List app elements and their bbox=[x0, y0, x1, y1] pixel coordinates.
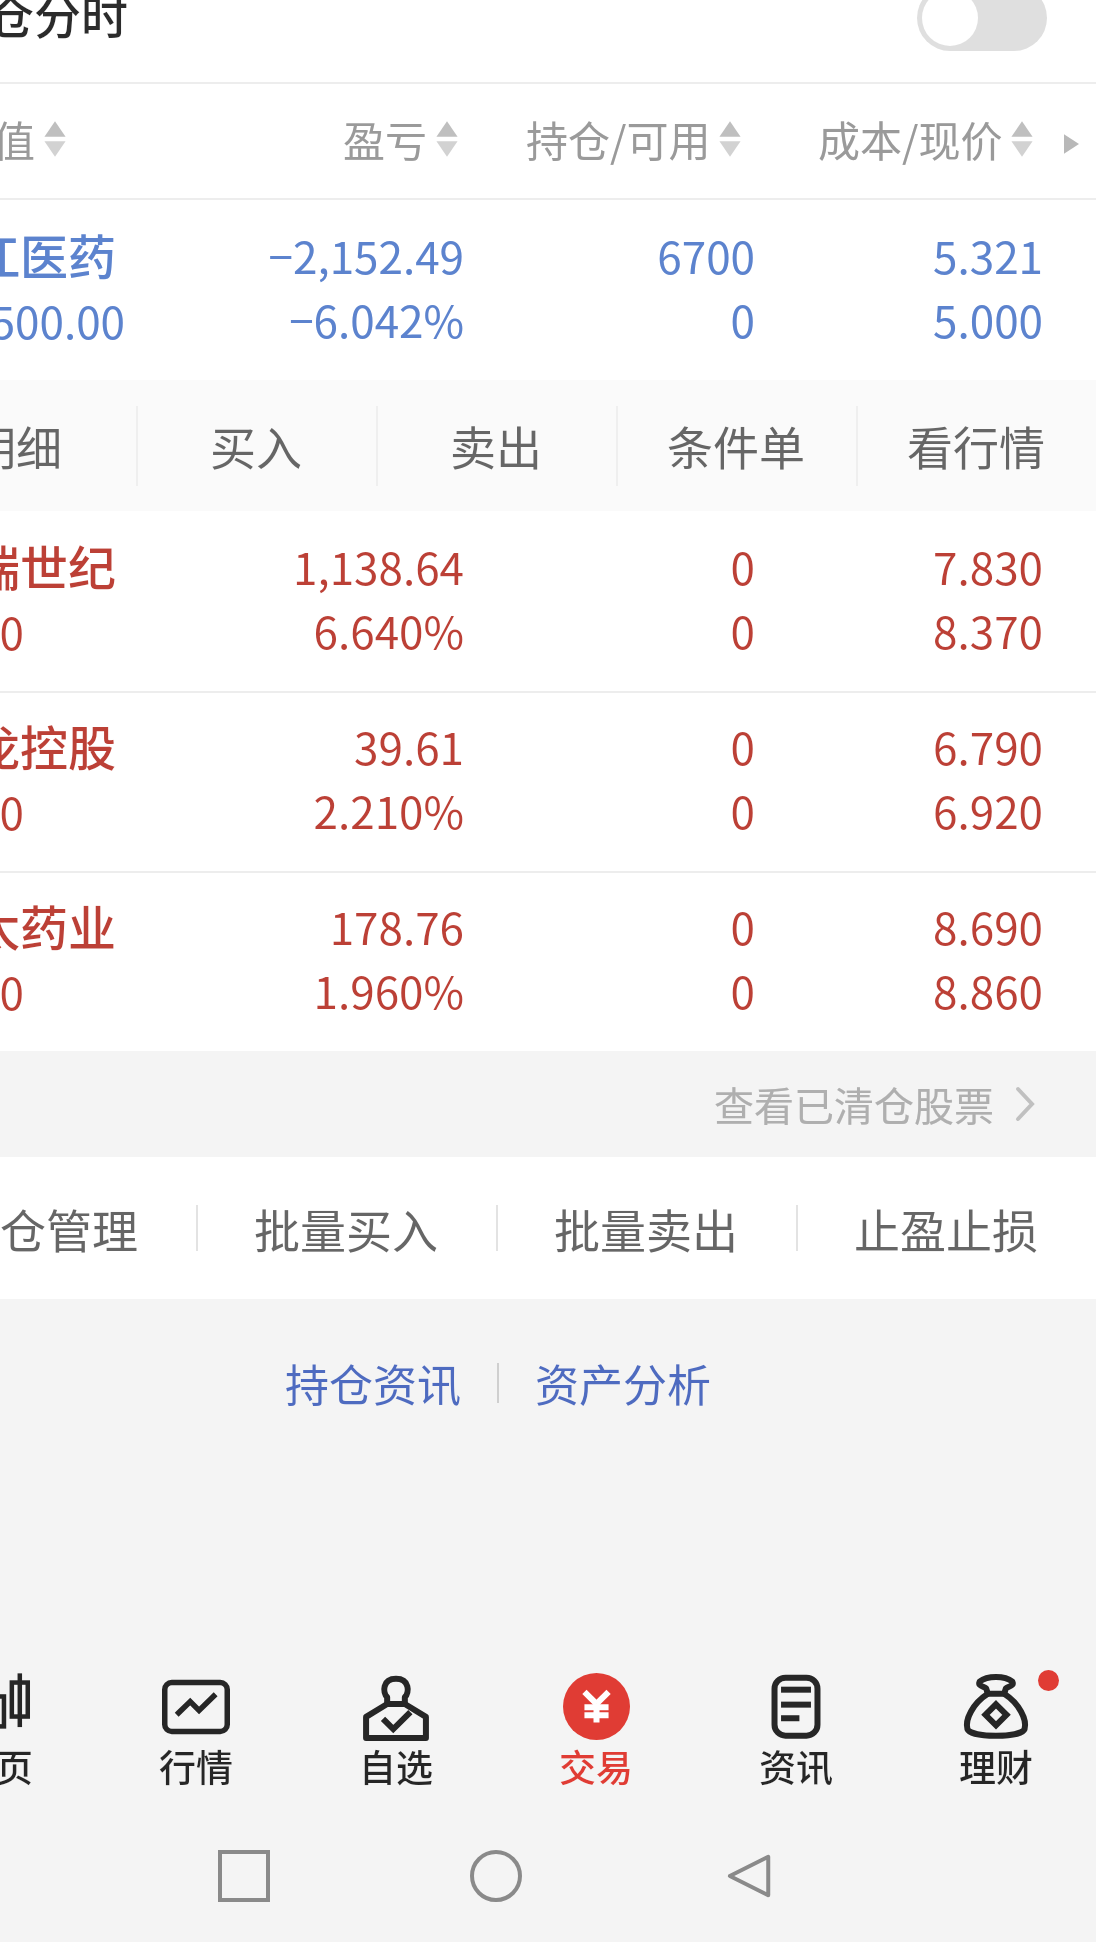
button[interactable]: 卖出 bbox=[376, 380, 616, 511]
staticText: 万瑞世纪 bbox=[0, 530, 117, 600]
staticText: 0 bbox=[335, 287, 755, 351]
staticText: 理财 bbox=[959, 1739, 1033, 1793]
staticText: 查看已清仓股票 bbox=[714, 1075, 994, 1133]
staticText: 持仓分时 bbox=[0, 0, 128, 47]
staticText: 0.00 bbox=[0, 599, 24, 663]
staticText: 6700 bbox=[335, 223, 755, 287]
staticText: 金龙控股 bbox=[0, 710, 117, 780]
button[interactable]: 行情 bbox=[96, 1630, 296, 1810]
button[interactable]: 止盈止损 bbox=[796, 1157, 1096, 1299]
staticText: 0 bbox=[335, 534, 755, 598]
button[interactable]: 买入 bbox=[136, 380, 376, 511]
staticText: 亚太药业 bbox=[0, 890, 117, 960]
staticText: 条件单 bbox=[667, 412, 805, 479]
staticText: 0 bbox=[335, 714, 755, 778]
button[interactable]: 市值 bbox=[0, 108, 66, 169]
staticText: 成本/现价 bbox=[818, 108, 1003, 169]
staticText: 资讯 bbox=[759, 1739, 833, 1793]
staticText: 1,138.64 bbox=[44, 534, 464, 598]
staticText: 明细 bbox=[0, 412, 62, 479]
staticText: 0.00 bbox=[0, 959, 24, 1023]
staticText: 5.321 bbox=[623, 223, 1043, 287]
staticText: 市值 bbox=[0, 108, 36, 169]
button[interactable]: 理财 bbox=[896, 1630, 1096, 1810]
staticText: 6.790 bbox=[623, 714, 1043, 778]
staticText: 8.860 bbox=[623, 958, 1043, 1022]
button[interactable]: 查看已清仓股票 bbox=[714, 1051, 1096, 1157]
staticText: 8.370 bbox=[623, 598, 1043, 662]
staticText: 交易 bbox=[559, 1739, 633, 1793]
staticText: 行情 bbox=[159, 1739, 233, 1793]
button[interactable]: 盈亏 bbox=[343, 108, 458, 169]
staticText: 0.00 bbox=[0, 779, 24, 843]
button[interactable]: Recents bbox=[194, 1826, 294, 1926]
staticText: 178.76 bbox=[44, 894, 464, 958]
button[interactable]: 批量买入 bbox=[196, 1157, 496, 1299]
button[interactable]: 明细 bbox=[0, 380, 136, 511]
staticText: 0 bbox=[335, 778, 755, 842]
staticText: 买入 bbox=[210, 412, 302, 479]
staticText: 首页 bbox=[0, 1739, 33, 1793]
button[interactable]: 浙江医药 bbox=[0, 200, 1096, 380]
staticText: 持仓/可用 bbox=[526, 108, 711, 169]
staticText: 7.830 bbox=[623, 534, 1043, 598]
button[interactable]: 持仓资讯 bbox=[285, 1351, 461, 1415]
staticText: 浙江医药 bbox=[0, 219, 117, 289]
staticText: 1.960% bbox=[44, 958, 464, 1022]
button[interactable]: Toggle minute chart bbox=[917, 0, 1047, 51]
staticText: 5.000 bbox=[623, 287, 1043, 351]
staticText: 6.920 bbox=[623, 778, 1043, 842]
staticText: 6.640% bbox=[44, 598, 464, 662]
staticText: 持仓管理 bbox=[0, 1195, 138, 1262]
button[interactable]: 首页 bbox=[0, 1630, 96, 1810]
staticText: 0 bbox=[335, 598, 755, 662]
staticText: 批量卖出 bbox=[554, 1195, 738, 1262]
button[interactable]: More columns bbox=[1064, 133, 1079, 155]
button[interactable]: 金龙控股 bbox=[0, 691, 1096, 871]
staticText: 2.210% bbox=[44, 778, 464, 842]
staticText: 卖出 bbox=[450, 412, 542, 479]
button[interactable]: 自选 bbox=[296, 1630, 496, 1810]
staticText: 0 bbox=[335, 894, 755, 958]
button[interactable]: 看行情 bbox=[856, 380, 1096, 511]
button[interactable]: 资产分析 bbox=[535, 1351, 711, 1415]
staticText: 批量买入 bbox=[254, 1195, 438, 1262]
staticText: 止盈止损 bbox=[854, 1195, 1038, 1262]
staticText: −2,152.49 bbox=[44, 223, 464, 287]
staticText: 8.690 bbox=[623, 894, 1043, 958]
button[interactable]: 成本/现价 bbox=[818, 108, 1033, 169]
staticText: 自选 bbox=[359, 1739, 433, 1793]
staticText: 26,500.00 bbox=[0, 288, 125, 352]
button[interactable]: 批量卖出 bbox=[496, 1157, 796, 1299]
button[interactable]: 条件单 bbox=[616, 380, 856, 511]
staticText: 39.61 bbox=[44, 714, 464, 778]
button[interactable]: 交易 bbox=[496, 1630, 696, 1810]
button[interactable]: Home bbox=[446, 1826, 546, 1926]
staticText: −6.042% bbox=[44, 287, 464, 351]
staticText: 0 bbox=[335, 958, 755, 1022]
staticText: 盈亏 bbox=[343, 108, 428, 169]
button[interactable]: 持仓管理 bbox=[0, 1157, 196, 1299]
staticText: 看行情 bbox=[907, 412, 1045, 479]
button[interactable]: 持仓/可用 bbox=[526, 108, 741, 169]
button[interactable]: 资讯 bbox=[696, 1630, 896, 1810]
button[interactable]: 亚太药业 bbox=[0, 871, 1096, 1051]
button[interactable]: 万瑞世纪 bbox=[0, 511, 1096, 691]
button[interactable]: Back bbox=[700, 1826, 800, 1926]
